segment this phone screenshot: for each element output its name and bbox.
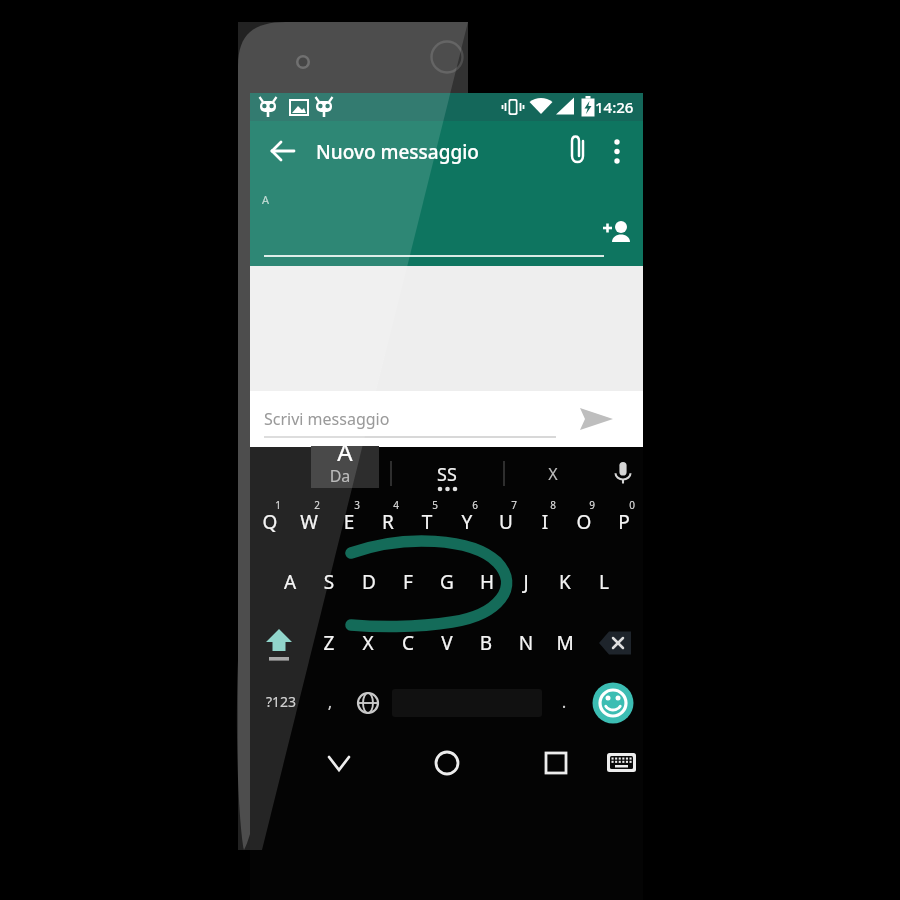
staticText: X [523, 463, 583, 900]
button[interactable]: Backspace [594, 617, 640, 669]
staticText: E [319, 509, 379, 900]
button[interactable]: G [427, 556, 466, 608]
staticText: , [300, 690, 360, 900]
button[interactable]: J [506, 556, 545, 608]
staticText: 3 [327, 498, 387, 900]
button[interactable]: A [270, 556, 309, 608]
button[interactable]: Write message [256, 396, 556, 442]
button[interactable]: Symbols [256, 680, 310, 726]
staticText: A [262, 192, 270, 207]
staticText: I [515, 509, 575, 900]
button[interactable]: L [584, 556, 623, 608]
staticText: L [574, 569, 634, 900]
button[interactable]: Attach file [556, 128, 602, 174]
button[interactable]: I [525, 496, 564, 548]
staticText: 4 [366, 498, 426, 900]
staticText: S [299, 569, 359, 900]
button[interactable]: Home [422, 740, 472, 786]
staticText: U [476, 509, 536, 900]
staticText: G [417, 569, 477, 900]
staticText: 14:26 [595, 97, 634, 117]
staticText: P [594, 509, 654, 900]
staticText: R [358, 509, 418, 900]
button[interactable]: S [309, 556, 348, 608]
staticText: N [496, 630, 556, 900]
staticText: 8 [523, 498, 583, 900]
button[interactable]: Comma [312, 680, 350, 726]
button[interactable]: B [466, 617, 505, 669]
button[interactable]: Back [314, 740, 364, 786]
staticText: B [456, 630, 516, 900]
button[interactable]: U [486, 496, 525, 548]
button[interactable]: Hide keyboard [600, 740, 646, 786]
staticText: M [535, 630, 595, 900]
button[interactable]: Space [390, 680, 544, 726]
staticText: F [378, 569, 438, 900]
staticText: O [554, 509, 614, 900]
staticText: 2 [287, 498, 347, 900]
button[interactable]: H [467, 556, 506, 608]
button[interactable]: Shift [256, 617, 304, 669]
button[interactable]: P [604, 496, 643, 548]
button[interactable]: V [427, 617, 466, 669]
staticText: W [279, 509, 339, 900]
staticText: SS [417, 462, 477, 900]
staticText: Y [437, 509, 497, 900]
staticText: Da [310, 465, 370, 900]
staticText: ?123 [251, 692, 311, 900]
staticText: C [378, 630, 438, 900]
button[interactable]: K [545, 556, 584, 608]
staticText: T [397, 509, 457, 900]
button[interactable]: M [545, 617, 584, 669]
button[interactable]: Add recipient [596, 212, 640, 256]
button[interactable]: Z [309, 617, 348, 669]
staticText: A [315, 435, 375, 900]
staticText: 6 [445, 498, 505, 900]
staticText: 9 [562, 498, 622, 900]
button[interactable]: D [349, 556, 388, 608]
button[interactable]: Period [546, 680, 584, 726]
button[interactable]: R [368, 496, 407, 548]
staticText: A [260, 569, 320, 900]
staticText: 1 [248, 498, 308, 900]
button[interactable]: Back [262, 128, 308, 174]
button[interactable]: Send [572, 396, 622, 442]
staticText: H [457, 569, 517, 900]
staticText: J [496, 569, 556, 900]
staticText: D [339, 569, 399, 900]
staticText: Z [299, 630, 359, 900]
staticText: 0 [602, 498, 662, 900]
staticText: Nuovo messaggio [316, 139, 479, 165]
button[interactable]: Q [250, 496, 289, 548]
button[interactable]: Emoji [592, 682, 634, 724]
button[interactable]: Y [447, 496, 486, 548]
button[interactable]: E [329, 496, 368, 548]
button[interactable]: Change language [348, 680, 388, 726]
staticText: Scrivi messaggio [264, 408, 390, 430]
staticText: X [338, 630, 398, 900]
staticText: K [535, 569, 595, 900]
button[interactable]: Recipient field [262, 180, 592, 258]
button[interactable]: F [388, 556, 427, 608]
button[interactable]: More options [596, 128, 638, 174]
staticText: V [417, 630, 477, 900]
button[interactable]: Voice input [604, 452, 644, 494]
button[interactable]: Recent apps [531, 740, 581, 786]
staticText: Q [240, 509, 300, 900]
staticText: 7 [484, 498, 544, 900]
button[interactable]: N [506, 617, 545, 669]
staticText: . [534, 690, 594, 900]
button[interactable]: O [564, 496, 603, 548]
button[interactable]: C [388, 617, 427, 669]
staticText: 5 [405, 498, 465, 900]
button[interactable]: T [407, 496, 446, 548]
button[interactable]: W [289, 496, 328, 548]
button[interactable]: X [348, 617, 387, 669]
